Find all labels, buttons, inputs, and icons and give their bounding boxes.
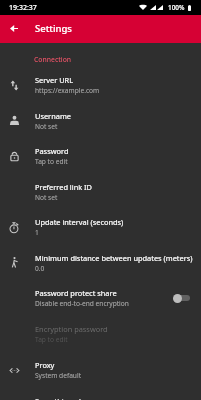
staticText: Update interval (seconds) (35, 217, 124, 227)
staticText: Disable end-to-end encryption (35, 299, 129, 308)
staticText: Proxy (35, 360, 55, 370)
staticText: 1 (35, 228, 39, 237)
staticText: Not set (35, 193, 58, 202)
button[interactable]: Password protect share (0, 280, 201, 316)
button[interactable]: Back (2, 16, 26, 40)
button[interactable]: Encryption password (0, 316, 201, 352)
staticText: Not set (35, 122, 58, 131)
button[interactable]: Preferred link ID (0, 174, 201, 209)
button[interactable]: Update interval (seconds) (0, 209, 201, 245)
staticText: Password protect share (35, 288, 117, 298)
button[interactable]: Minimum distance between updates (meters… (0, 245, 201, 280)
staticText: Minimum distance between updates (meters… (35, 253, 193, 263)
staticText: Server URL (35, 75, 74, 85)
staticText: Connection (34, 55, 72, 64)
button[interactable]: Something else (0, 388, 201, 400)
button[interactable]: Server URL (0, 67, 201, 103)
button[interactable]: Password (0, 138, 201, 174)
staticText: Preferred link ID (35, 182, 92, 192)
button[interactable]: Username (0, 103, 201, 138)
staticText: 100% (168, 3, 185, 12)
staticText: Password (35, 146, 69, 156)
staticText: Tap to edit (35, 335, 68, 344)
staticText: System default (35, 371, 82, 380)
button[interactable]: Toggle password protect share (173, 280, 201, 316)
staticText: Settings (35, 22, 72, 35)
staticText: 19:32:37 (9, 3, 37, 13)
button[interactable]: Proxy (0, 352, 201, 388)
staticText: 0.0 (35, 264, 45, 273)
staticText: https://example.com (35, 86, 100, 95)
staticText: Username (35, 111, 71, 121)
staticText: Encryption password (35, 324, 108, 334)
staticText: Something else (35, 396, 89, 400)
staticText: Tap to edit (35, 157, 68, 166)
